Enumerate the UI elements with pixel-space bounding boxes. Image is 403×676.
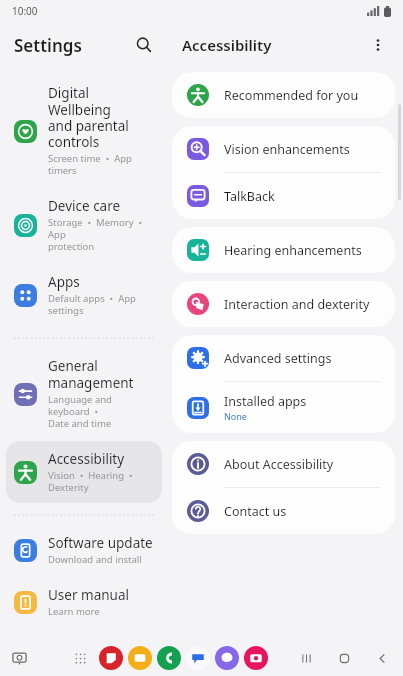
button[interactable]: Recents xyxy=(291,643,321,673)
button[interactable]: Home xyxy=(329,643,359,673)
staticText: General management xyxy=(48,357,134,392)
staticText: Apps xyxy=(48,273,80,291)
staticText: Software update xyxy=(48,534,153,552)
button[interactable]: Contact us xyxy=(172,488,395,534)
staticText: Settings xyxy=(14,34,82,57)
button[interactable]: Notes xyxy=(99,646,123,670)
staticText: Screen time • App timers xyxy=(48,152,154,177)
staticText: Storage • Memory • App protection xyxy=(48,216,154,253)
staticText: Contact us xyxy=(224,503,287,520)
staticText: Advanced settings xyxy=(224,350,332,367)
staticText: Accessibility xyxy=(48,450,125,468)
button[interactable]: Camera xyxy=(244,646,268,670)
button[interactable]: Device care xyxy=(6,188,162,262)
staticText: Hearing enhancements xyxy=(224,242,362,259)
button[interactable]: TalkBack xyxy=(172,173,395,219)
button[interactable]: Hearing enhancements xyxy=(172,227,395,273)
button[interactable]: Apps xyxy=(68,646,92,670)
button[interactable]: User manual xyxy=(6,577,162,627)
button[interactable]: Vision enhancements xyxy=(172,126,395,172)
button[interactable]: General management xyxy=(6,348,162,439)
staticText: Vision enhancements xyxy=(224,141,350,158)
button[interactable]: Recent screen xyxy=(6,645,32,671)
button[interactable]: My Files xyxy=(128,646,152,670)
staticText: Device care xyxy=(48,197,121,215)
button[interactable]: Accessibility xyxy=(6,441,162,503)
staticText: Installed apps xyxy=(224,393,307,410)
staticText: 10:00 xyxy=(12,4,38,18)
staticText: About Accessibility xyxy=(224,456,334,473)
button[interactable]: About Accessibility xyxy=(172,441,395,487)
button[interactable]: Digital Wellbeing and parental controls xyxy=(6,75,162,186)
staticText: User manual xyxy=(48,586,129,604)
button[interactable]: Interaction and dexterity xyxy=(172,281,395,327)
button[interactable]: Phone xyxy=(157,646,181,670)
staticText: Digital Wellbeing and parental controls xyxy=(48,84,154,151)
button[interactable]: More options xyxy=(365,32,391,58)
staticText: Accessibility xyxy=(182,35,272,55)
staticText: Interaction and dexterity xyxy=(224,296,370,313)
button[interactable]: Internet xyxy=(215,646,239,670)
button[interactable]: Advanced settings xyxy=(172,335,395,381)
staticText: TalkBack xyxy=(224,188,275,205)
staticText: Vision • Hearing • Dexterity xyxy=(48,469,133,494)
staticText: Default apps • App settings xyxy=(48,292,154,317)
staticText: Learn more xyxy=(48,605,100,618)
staticText: None xyxy=(224,410,247,422)
button[interactable]: Installed apps xyxy=(172,382,395,433)
staticText: Recommended for you xyxy=(224,87,359,104)
staticText: Language and keyboard • Date and time xyxy=(48,393,154,430)
button[interactable]: Search xyxy=(130,31,158,59)
button[interactable]: Software update xyxy=(6,525,162,575)
button[interactable]: Apps xyxy=(6,264,162,326)
button[interactable]: Recommended for you xyxy=(172,72,395,118)
button[interactable]: Back xyxy=(367,643,397,673)
button[interactable]: Messages xyxy=(186,646,210,670)
staticText: Download and install xyxy=(48,553,142,566)
